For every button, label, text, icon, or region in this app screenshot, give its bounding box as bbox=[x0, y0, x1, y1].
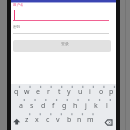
staticText: v bbox=[56, 115, 60, 125]
staticText: p bbox=[109, 87, 114, 97]
button[interactable]: 用户名 bbox=[13, 2, 109, 21]
button[interactable]: 登录 bbox=[13, 40, 111, 52]
button[interactable]: f bbox=[48, 100, 58, 112]
button[interactable]: e bbox=[33, 86, 43, 98]
staticText: b bbox=[67, 115, 72, 125]
staticText: 用户名 bbox=[13, 3, 24, 7]
button[interactable]: d bbox=[38, 100, 48, 112]
staticText: 密码 bbox=[13, 25, 20, 29]
button[interactable]: p bbox=[106, 86, 116, 98]
staticText: o bbox=[99, 87, 104, 97]
button[interactable]: n bbox=[74, 114, 84, 126]
staticText: f bbox=[52, 101, 55, 111]
staticText: a bbox=[19, 101, 23, 111]
button[interactable]: b bbox=[64, 114, 74, 126]
staticText: w bbox=[24, 87, 30, 97]
button[interactable]: z bbox=[22, 114, 32, 126]
button[interactable]: g bbox=[59, 100, 69, 112]
button[interactable]: o bbox=[96, 86, 106, 98]
button[interactable]: a bbox=[16, 100, 26, 112]
staticText: d bbox=[41, 101, 46, 111]
button[interactable]: q bbox=[11, 86, 21, 98]
button[interactable]: v bbox=[53, 114, 63, 126]
staticText: q bbox=[14, 87, 19, 97]
staticText: r bbox=[47, 87, 50, 97]
button[interactable]: i bbox=[85, 86, 95, 98]
button[interactable]: r bbox=[43, 86, 53, 98]
button[interactable]: j bbox=[81, 100, 91, 112]
staticText: i bbox=[89, 87, 91, 97]
staticText: j bbox=[85, 101, 87, 111]
staticText: k bbox=[94, 101, 98, 111]
button[interactable]: 密码 bbox=[13, 24, 109, 34]
button[interactable]: c bbox=[43, 114, 53, 126]
button[interactable]: u bbox=[75, 86, 85, 98]
staticText: 登录 bbox=[61, 41, 69, 46]
button[interactable] bbox=[11, 115, 23, 128]
staticText: m bbox=[87, 115, 94, 125]
button[interactable]: m bbox=[85, 114, 95, 126]
staticText: y bbox=[67, 87, 71, 97]
button[interactable]: w bbox=[22, 86, 32, 98]
button[interactable]: k bbox=[91, 100, 101, 112]
staticText: n bbox=[77, 115, 82, 125]
staticText: g bbox=[62, 101, 67, 111]
staticText: e bbox=[36, 87, 40, 97]
staticText: z bbox=[25, 115, 29, 125]
button[interactable]: h bbox=[70, 100, 80, 112]
button[interactable] bbox=[102, 115, 116, 128]
button[interactable]: l bbox=[102, 100, 112, 112]
staticText: x bbox=[35, 115, 39, 125]
staticText: h bbox=[73, 101, 78, 111]
staticText: u bbox=[78, 87, 83, 97]
button[interactable]: y bbox=[64, 86, 74, 98]
button[interactable]: x bbox=[32, 114, 42, 126]
staticText: s bbox=[30, 101, 34, 111]
button[interactable]: t bbox=[54, 86, 64, 98]
staticText: c bbox=[46, 115, 50, 125]
staticText: t bbox=[58, 87, 61, 97]
staticText: l bbox=[106, 101, 108, 111]
button[interactable]: s bbox=[27, 100, 37, 112]
